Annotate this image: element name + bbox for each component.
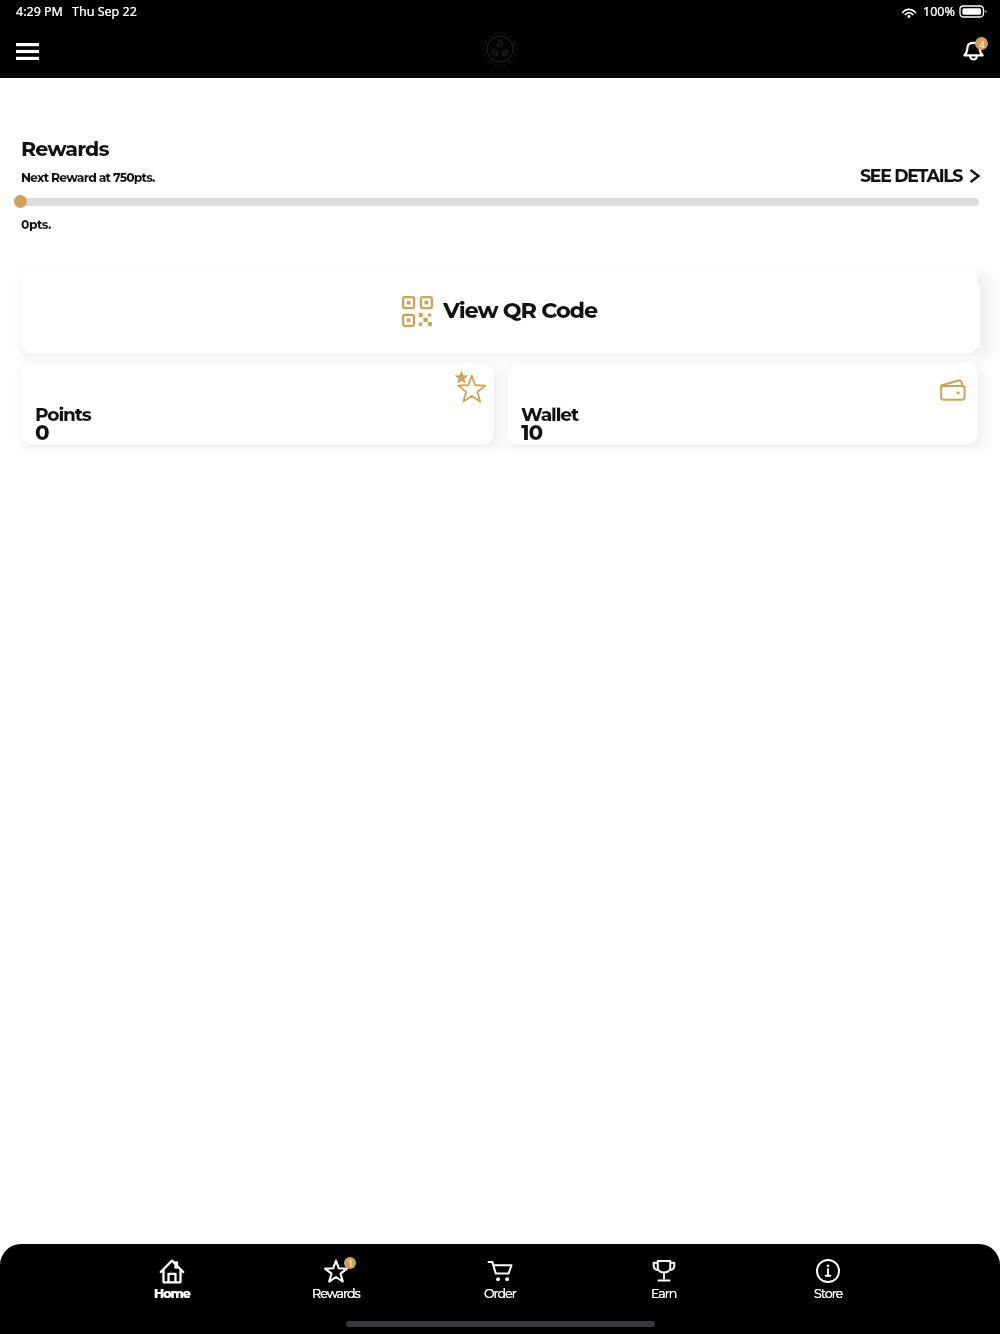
button[interactable]: Wallet — [507, 363, 978, 445]
button[interactable]: Notifications — [950, 27, 996, 73]
staticText: Order — [484, 1286, 516, 1301]
staticText: Next Reward at 750pts. — [21, 170, 155, 185]
button[interactable]: Open menu — [5, 28, 50, 74]
staticText: View QR Code — [443, 296, 598, 323]
staticText: Points — [35, 403, 91, 426]
staticText: 4:29 PM — [16, 3, 63, 20]
button[interactable]: 1 — [254, 1259, 418, 1301]
button[interactable]: Order — [418, 1259, 582, 1301]
button[interactable]: Earn — [582, 1259, 746, 1301]
staticText: 100% — [923, 3, 955, 20]
button[interactable]: Points — [21, 363, 494, 445]
staticText: 1 — [348, 1258, 353, 1269]
staticText: Wallet — [521, 403, 579, 426]
staticText: Rewards — [21, 136, 109, 161]
button[interactable]: SEE DETAILS — [860, 165, 979, 186]
staticText: 10 — [521, 419, 543, 445]
staticText: 4 — [979, 38, 985, 50]
staticText: Thu Sep 22 — [72, 3, 137, 20]
staticText: SEE DETAILS — [860, 165, 963, 186]
staticText: 0pts. — [21, 217, 51, 232]
staticText: Rewards — [312, 1286, 360, 1301]
button[interactable]: Store — [746, 1259, 910, 1301]
button[interactable]: View QR Code — [21, 268, 978, 354]
staticText: Earn — [651, 1286, 677, 1301]
button[interactable]: Home — [90, 1259, 254, 1301]
staticText: 0 — [35, 419, 49, 445]
staticText: Home — [154, 1286, 190, 1301]
staticText: Store — [814, 1286, 843, 1301]
